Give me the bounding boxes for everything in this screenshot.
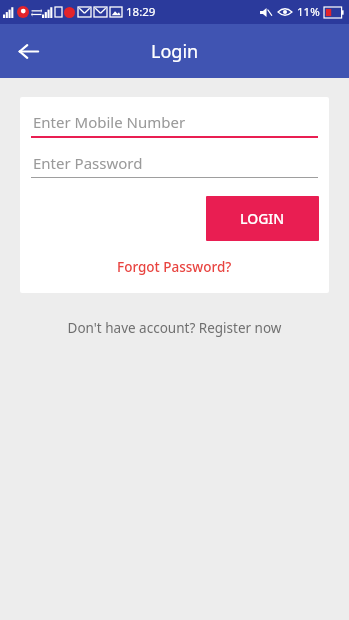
button[interactable]: LOGIN [206, 196, 319, 241]
staticText: Forgot Password? [117, 258, 232, 276]
button[interactable]: Don't have account? Register now [0, 315, 349, 341]
staticText: Enter Mobile Number [33, 112, 186, 132]
button[interactable]: Forgot Password? [20, 255, 329, 279]
staticText: LOGIN [240, 209, 285, 228]
button[interactable]: Enter Password [31, 148, 318, 178]
button[interactable]: Enter Mobile Number [31, 107, 318, 138]
staticText: 11% [297, 4, 320, 20]
button[interactable]: Back [6, 29, 50, 73]
staticText: Login [151, 39, 199, 64]
staticText: Enter Password [33, 153, 143, 173]
staticText: 18:29 [126, 4, 156, 20]
